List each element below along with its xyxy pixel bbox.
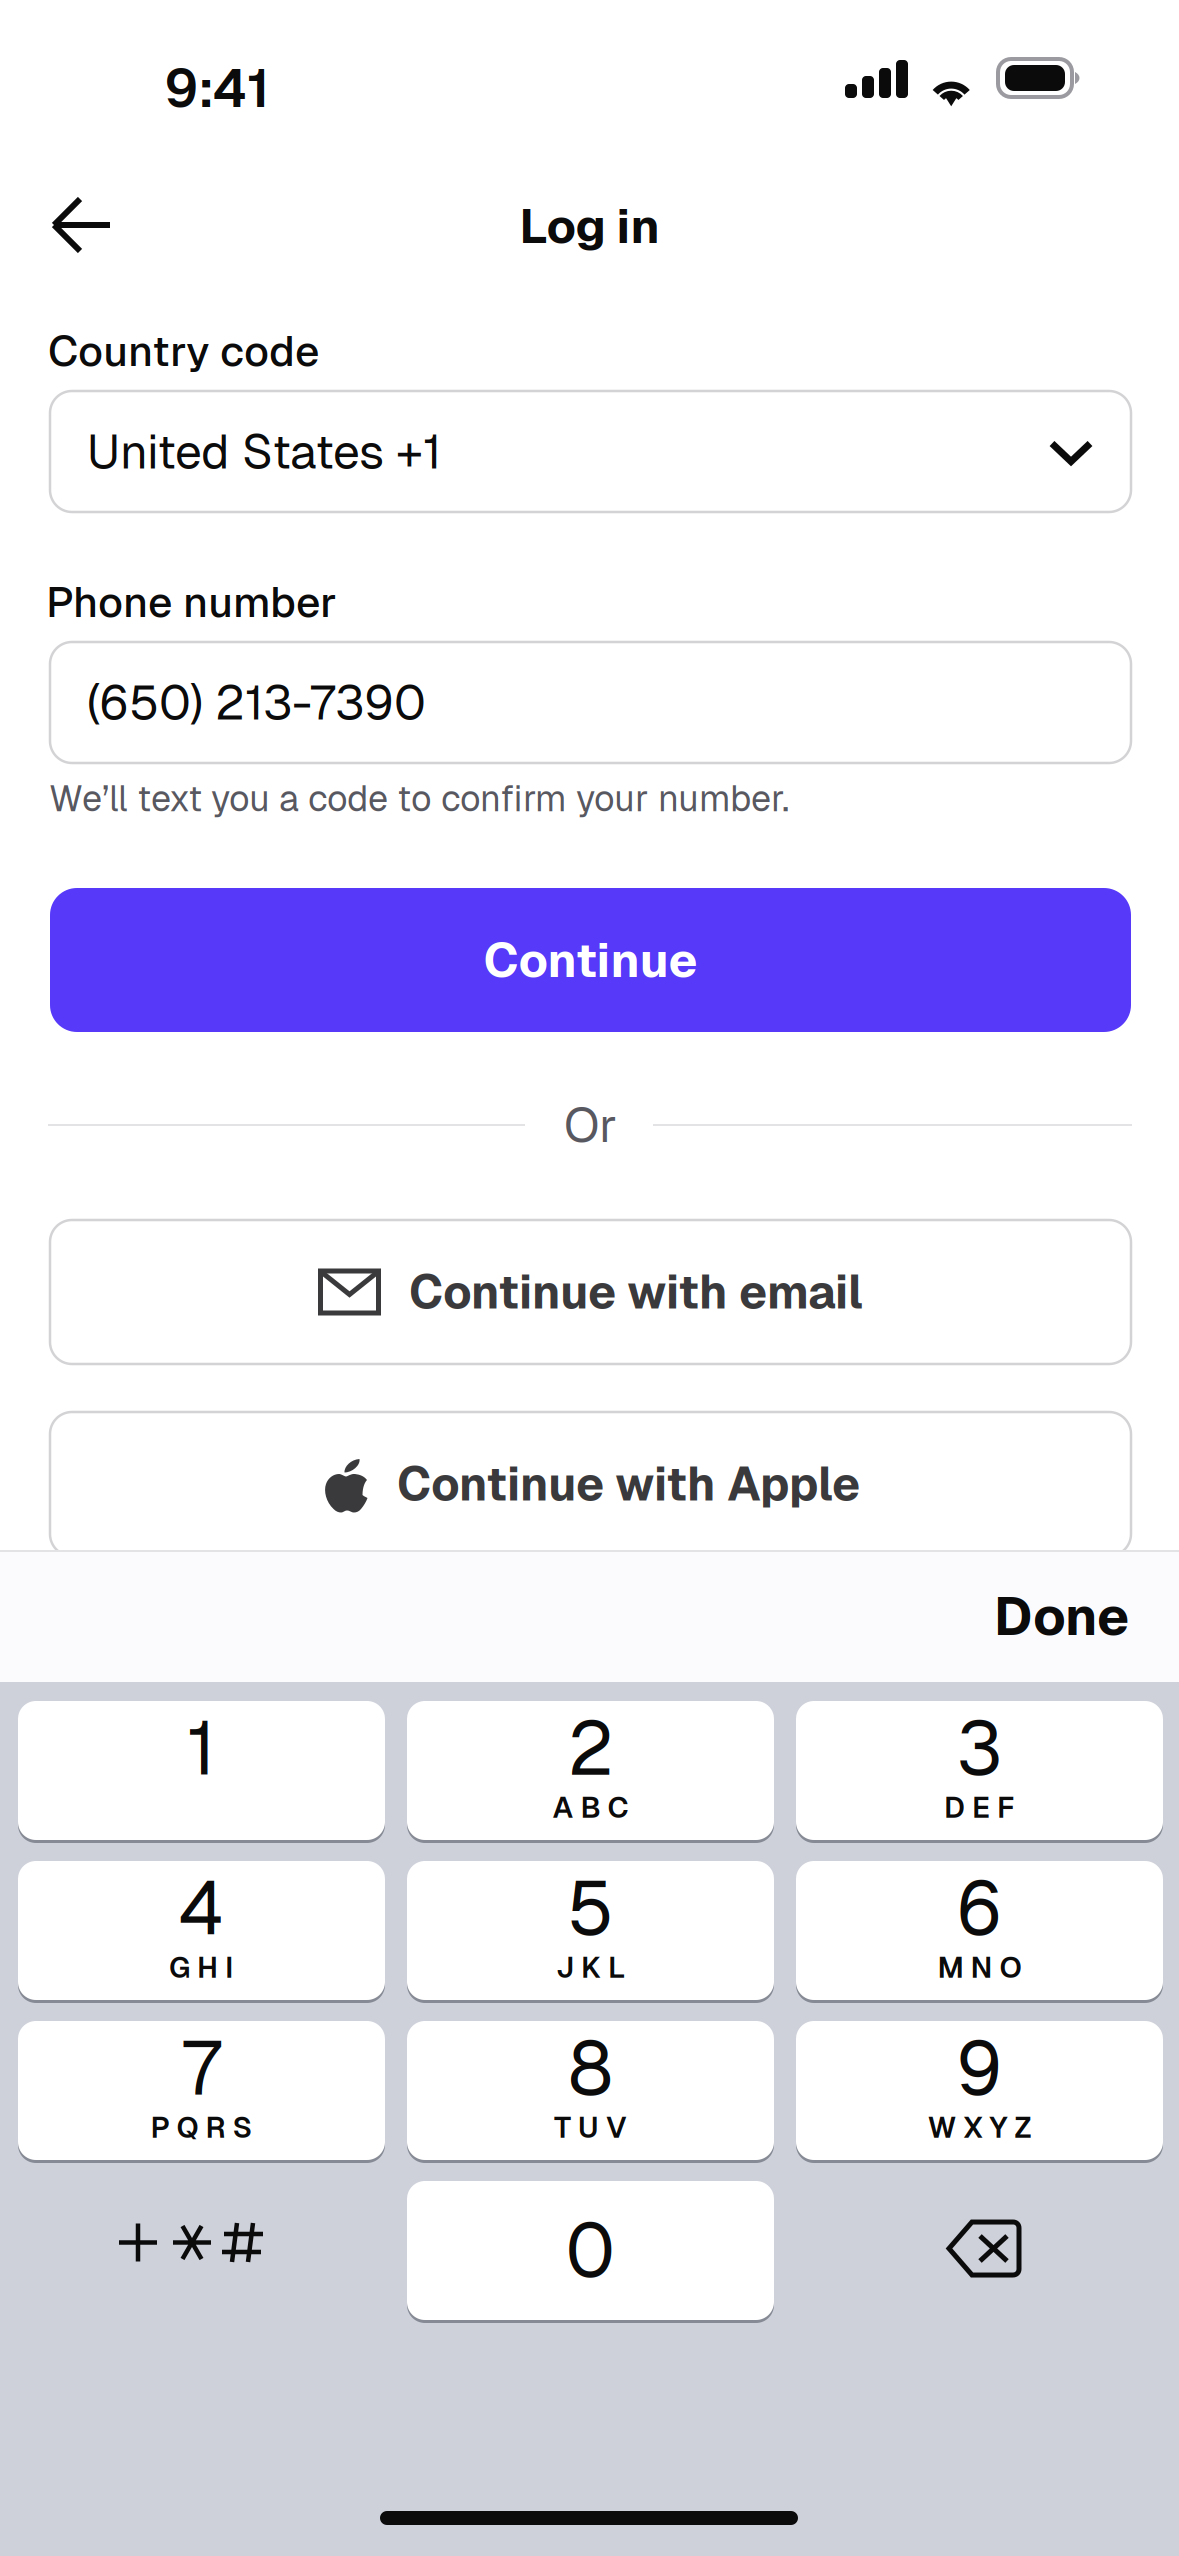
button[interactable]: 8	[407, 2021, 774, 2163]
staticText: J K L	[556, 1948, 625, 1986]
button[interactable]: 2	[407, 1701, 774, 1843]
staticText: 5	[567, 1860, 614, 1957]
button[interactable]: 4	[18, 1861, 385, 2003]
staticText: 6	[956, 1860, 1003, 1957]
staticText: T U V	[554, 2108, 627, 2146]
staticText: (650) 213-7390	[87, 671, 426, 734]
button[interactable]: 1	[18, 1701, 385, 1843]
button[interactable]: 3	[796, 1701, 1163, 1843]
staticText: 1	[187, 1700, 216, 1797]
button[interactable]: 9	[796, 2021, 1163, 2163]
staticText: P Q R S	[150, 2108, 252, 2146]
staticText: 4	[178, 1860, 224, 1957]
button[interactable]: Back	[22, 167, 138, 283]
staticText: United States +1	[87, 420, 441, 483]
staticText: M N O	[937, 1948, 1021, 1986]
staticText: 2	[567, 1700, 613, 1797]
staticText: W X Y Z	[927, 2108, 1031, 2146]
staticText: Or	[564, 1094, 617, 1156]
staticText: Continue	[483, 929, 697, 991]
staticText: Continue with Apple	[397, 1454, 860, 1514]
button[interactable]: 0	[407, 2181, 774, 2323]
staticText: 3	[956, 1700, 1002, 1797]
button[interactable]: 7	[18, 2021, 385, 2163]
staticText: Phone number	[46, 574, 337, 629]
staticText: 8	[568, 2020, 613, 2117]
staticText: Country code	[48, 323, 320, 378]
button[interactable]: Delete	[796, 2181, 1163, 2320]
staticText: G H I	[169, 1948, 234, 1986]
button[interactable]: Done	[909, 1550, 1129, 1682]
staticText: Log in	[519, 195, 659, 257]
staticText: Done	[994, 1581, 1129, 1651]
button[interactable]: Continue	[50, 888, 1131, 1032]
staticText: 9:41	[164, 53, 270, 123]
staticText: A B C	[552, 1788, 628, 1826]
staticText: 7	[182, 2020, 221, 2117]
button[interactable]: 6	[796, 1861, 1163, 2003]
staticText: 9	[956, 2020, 1003, 2117]
staticText: D E F	[944, 1788, 1015, 1826]
button[interactable]: 5	[407, 1861, 774, 2003]
button[interactable]: Continue with Apple	[50, 1412, 1131, 1556]
button[interactable]: Continue with email	[50, 1220, 1131, 1364]
staticText: 0	[565, 2202, 615, 2299]
staticText: We’ll text you a code to confirm your nu…	[49, 775, 789, 822]
button[interactable]: (650) 213-7390	[50, 642, 1131, 763]
staticText: Continue with email	[409, 1262, 863, 1322]
button[interactable]: United States +1	[50, 391, 1131, 512]
button[interactable]: Plus, star and pound symbols	[18, 2181, 385, 2320]
